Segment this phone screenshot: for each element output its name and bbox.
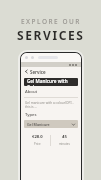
button[interactable]: Back: [24, 69, 29, 74]
staticText: Gel Manicure: [27, 122, 50, 127]
staticText: Gel manicure with a colour(OPI - this is…: [25, 101, 78, 109]
button[interactable]: Back: [21, 67, 81, 76]
staticText: Types: [25, 112, 37, 118]
staticText: Service: [30, 69, 46, 75]
staticText: SERVICES: [17, 27, 85, 43]
staticText: EXPLORE OUR: [21, 17, 81, 26]
staticText: Price: [34, 142, 41, 146]
staticText: €28.0: [32, 134, 43, 140]
staticText: About: [25, 89, 38, 95]
button[interactable]: Gel Manicure: [24, 120, 78, 128]
staticText: minutes: [59, 142, 70, 146]
button[interactable]: Gel Manicure with Colour: [24, 78, 78, 86]
staticText: 45: [62, 134, 67, 140]
staticText: Gel Manicure with Colour: [27, 78, 75, 86]
